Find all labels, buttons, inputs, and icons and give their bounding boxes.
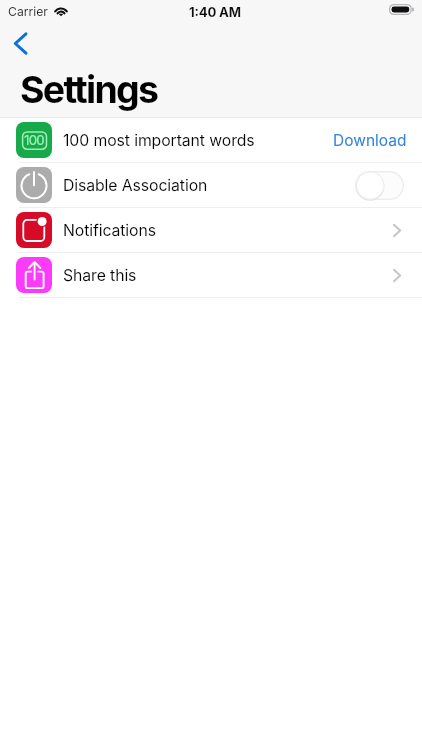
staticText: 100 most important words [63, 131, 255, 150]
staticText: Disable Association [63, 176, 208, 195]
staticText: Settings [20, 67, 158, 112]
button[interactable]: 100 [0, 118, 422, 163]
button[interactable]: Notifications [0, 208, 422, 253]
staticText: 100 [24, 132, 44, 148]
staticText: Download [333, 131, 407, 150]
staticText: Notifications [63, 221, 156, 240]
button[interactable]: Back [5, 28, 35, 58]
staticText: Share this [63, 266, 137, 285]
button[interactable]: Disable Association toggle [355, 171, 404, 200]
staticText: 1:40 AM [189, 4, 241, 20]
button[interactable]: Share this [0, 253, 422, 298]
button[interactable]: Disable Association [0, 163, 422, 208]
staticText: Carrier [8, 4, 48, 19]
